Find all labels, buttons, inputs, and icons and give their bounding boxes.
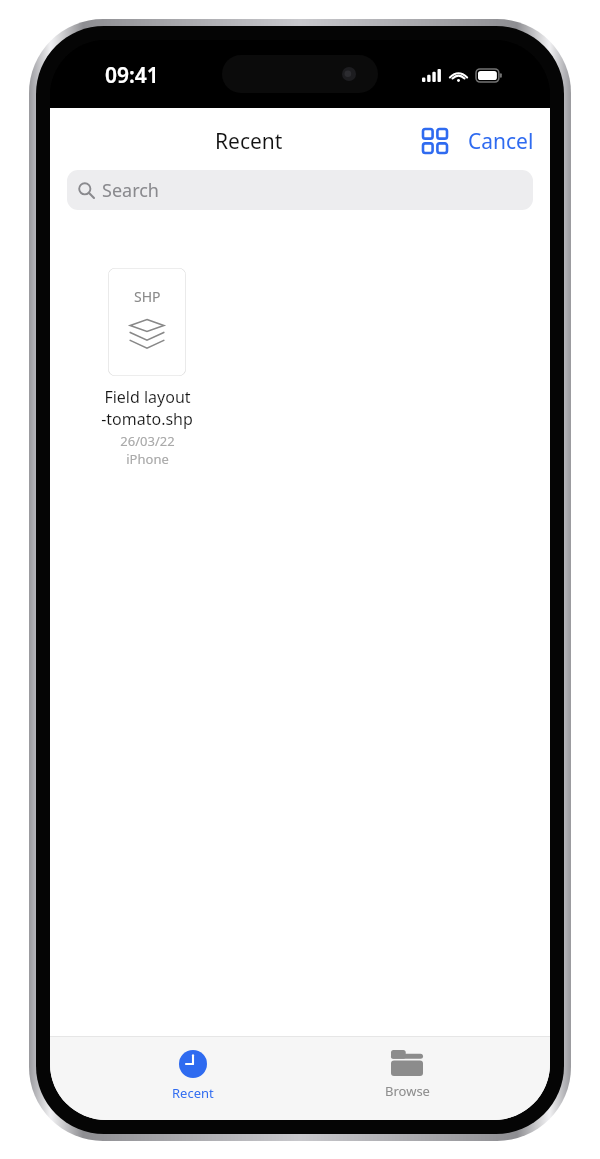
staticText: Browse: [385, 1082, 430, 1100]
staticText: Recent: [172, 1084, 214, 1102]
button[interactable]: SHP: [91, 268, 203, 468]
staticText: -tomato.shp: [101, 408, 193, 430]
button[interactable]: Browse: [337, 1036, 477, 1100]
staticText: Cancel: [468, 127, 534, 156]
staticText: Recent: [215, 127, 283, 156]
staticText: SHP: [134, 287, 161, 306]
staticText: iPhone: [126, 450, 169, 468]
button[interactable]: Recent: [123, 1036, 263, 1102]
staticText: 09:41: [105, 61, 159, 90]
staticText: 26/03/22: [120, 432, 175, 450]
staticText: Search: [102, 178, 159, 203]
button[interactable]: Cancel: [452, 119, 550, 164]
button[interactable]: Grid view: [415, 121, 455, 161]
button[interactable]: Search: [67, 170, 533, 210]
staticText: Field layout: [104, 386, 191, 408]
